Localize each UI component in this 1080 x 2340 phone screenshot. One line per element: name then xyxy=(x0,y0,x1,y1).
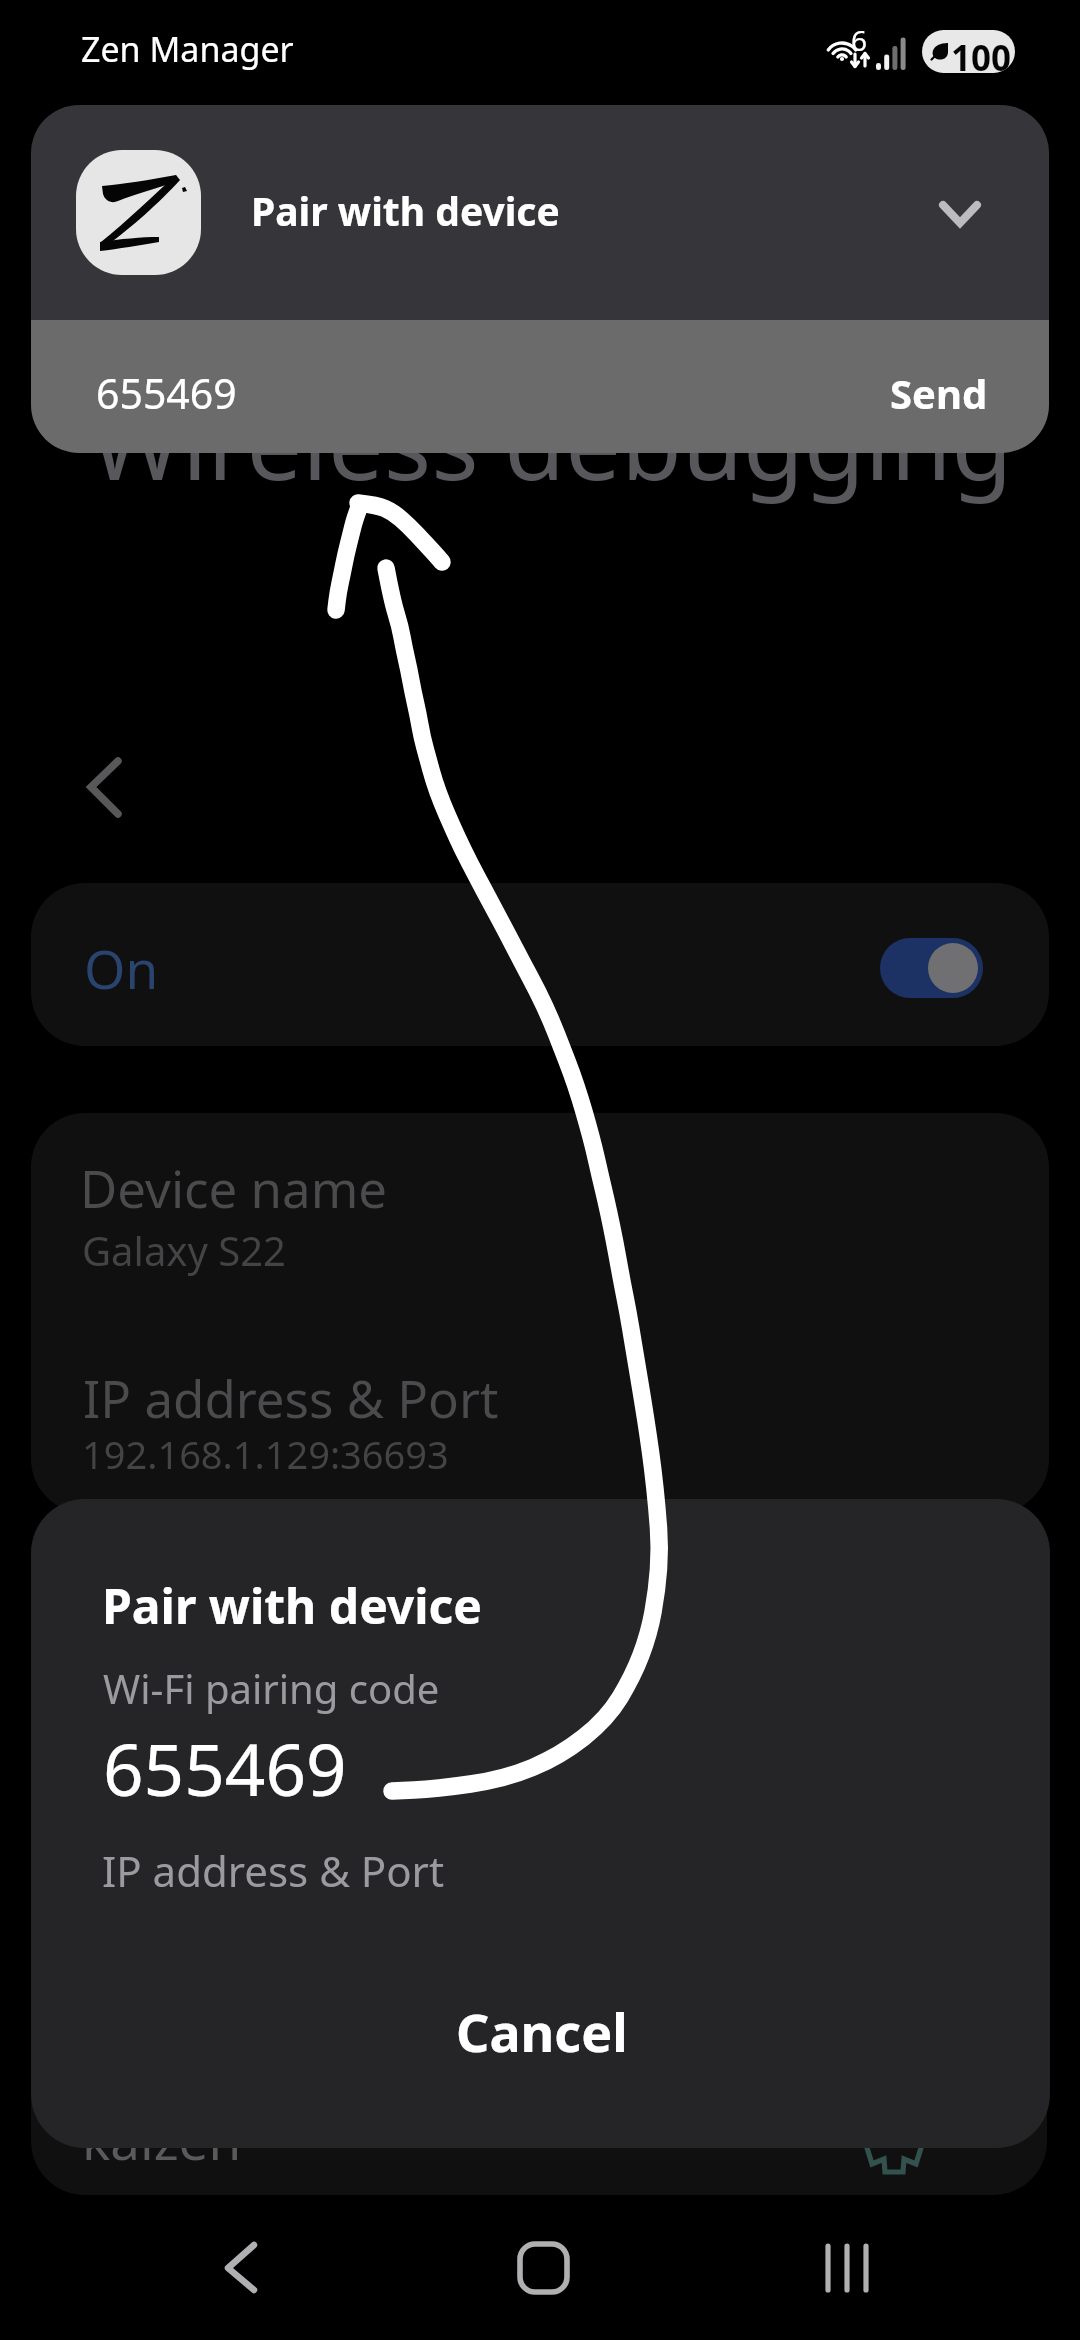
button[interactable]: On xyxy=(31,883,1049,1046)
staticText: On xyxy=(84,932,159,1004)
button[interactable]: Expand notification xyxy=(920,173,1000,253)
button[interactable]: Back xyxy=(40,730,160,850)
button[interactable]: Pair with device xyxy=(31,105,1049,320)
staticText: Galaxy S22 xyxy=(82,1223,286,1277)
staticText: Send xyxy=(890,366,988,420)
staticText: kaizen xyxy=(82,2103,242,2175)
staticText: Wireless debugging xyxy=(90,374,1013,509)
staticText: IP address & Port xyxy=(102,1842,445,1899)
button[interactable]: 655469 xyxy=(31,320,1049,453)
staticText: Cancel xyxy=(456,1996,628,2067)
staticText: Pair with device xyxy=(251,184,560,237)
staticText: 655469 xyxy=(96,365,237,421)
button[interactable]: Back xyxy=(183,2190,333,2340)
staticText: Wi-Fi pairing code xyxy=(103,1661,440,1715)
staticText: 100 xyxy=(951,34,1012,73)
staticText: Device name xyxy=(80,1153,388,1222)
staticText: 6 xyxy=(851,21,868,59)
staticText: 192.168.1.129:36693 xyxy=(82,1428,449,1480)
staticText: 655469 xyxy=(103,1720,347,1817)
staticText: Zen Manager xyxy=(81,26,294,72)
button[interactable]: Cancel xyxy=(31,1949,1050,2148)
button[interactable]: Recent apps xyxy=(772,2190,922,2340)
staticText: IP address & Port xyxy=(83,1363,499,1432)
staticText: Pair with device xyxy=(102,1573,483,1638)
button[interactable]: Home xyxy=(468,2190,618,2340)
